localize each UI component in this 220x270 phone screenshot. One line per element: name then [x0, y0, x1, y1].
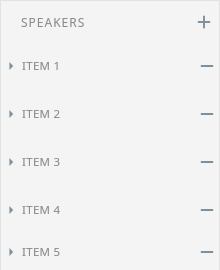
button[interactable]: Remove ITEM 3: [196, 151, 218, 173]
staticText: ITEM 4: [22, 202, 61, 218]
staticText: ITEM 2: [22, 106, 61, 122]
button[interactable]: Expand ITEM 5: [0, 234, 220, 270]
button[interactable]: Remove ITEM 5: [196, 241, 218, 263]
button[interactable]: Expand ITEM 2: [0, 90, 220, 138]
button[interactable]: Remove ITEM 1: [196, 55, 218, 77]
button[interactable]: Expand ITEM 1: [5, 60, 17, 72]
button[interactable]: Remove ITEM 2: [196, 103, 218, 125]
button[interactable]: Expand ITEM 1: [0, 42, 220, 90]
button[interactable]: Expand ITEM 4: [0, 186, 220, 234]
button[interactable]: Expand ITEM 2: [5, 108, 17, 120]
staticText: SPEAKERS: [21, 14, 86, 30]
button[interactable]: Expand ITEM 5: [5, 246, 17, 258]
button[interactable]: Expand ITEM 3: [5, 156, 17, 168]
staticText: ITEM 5: [22, 244, 61, 260]
button[interactable]: Add speaker: [191, 9, 217, 35]
button[interactable]: Expand ITEM 3: [0, 138, 220, 186]
button[interactable]: Remove ITEM 4: [196, 199, 218, 221]
staticText: ITEM 1: [22, 58, 61, 74]
staticText: ITEM 3: [22, 154, 61, 170]
button[interactable]: Expand ITEM 4: [5, 204, 17, 216]
